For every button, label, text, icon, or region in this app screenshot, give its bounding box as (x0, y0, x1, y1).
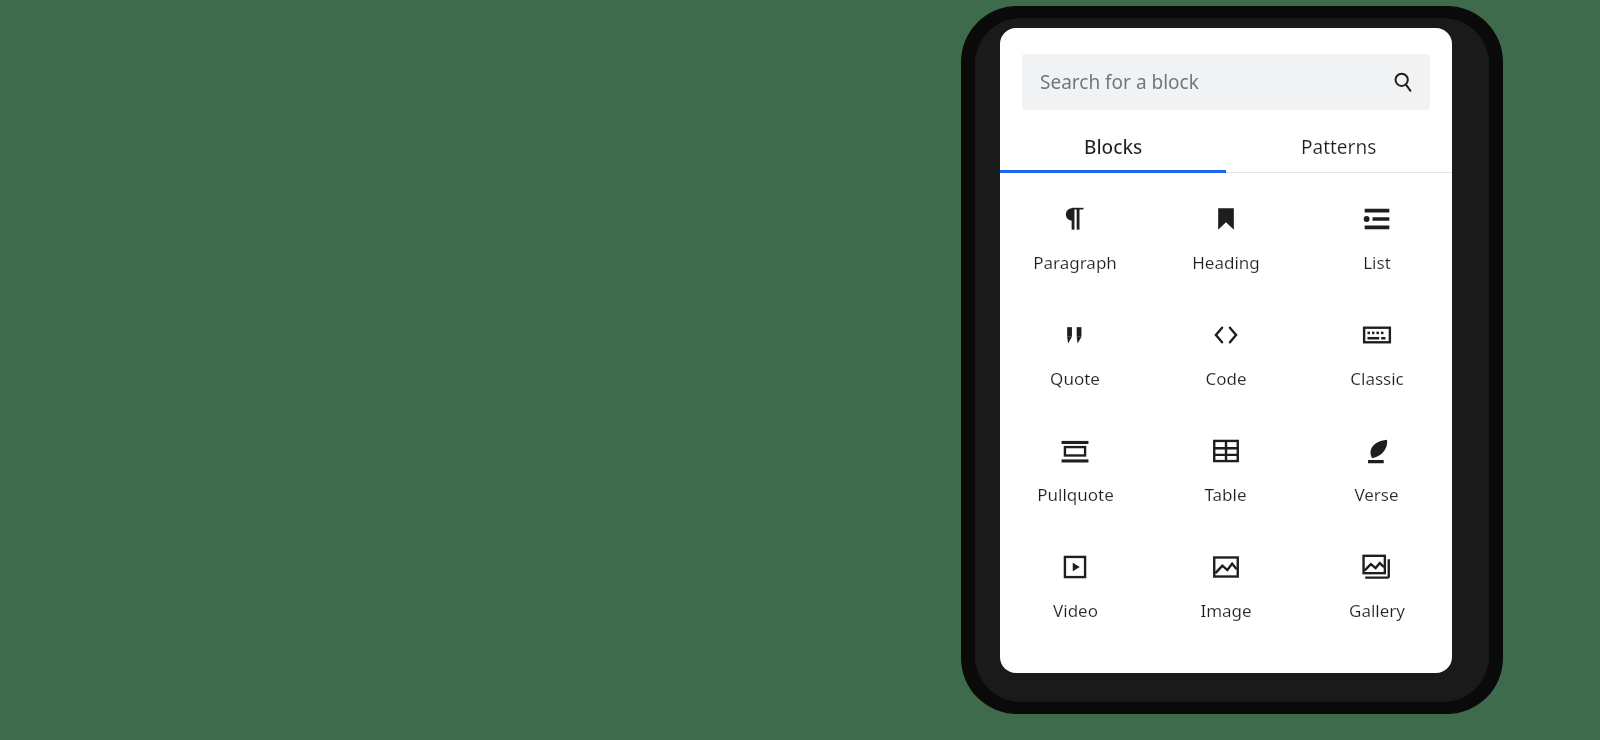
button[interactable]: Code (1150, 305, 1301, 421)
staticText: Image (1200, 599, 1252, 622)
staticText: Patterns (1301, 134, 1377, 160)
button[interactable]: Image (1150, 537, 1301, 653)
button[interactable]: Patterns (1226, 124, 1452, 170)
button[interactable]: Heading (1150, 189, 1301, 305)
button[interactable]: Pullquote (1000, 421, 1150, 537)
staticText: Classic (1350, 367, 1404, 390)
staticText: Blocks (1084, 134, 1143, 160)
staticText: Gallery (1349, 599, 1405, 622)
button[interactable]: Verse (1301, 421, 1452, 537)
button[interactable]: Paragraph (1000, 189, 1150, 305)
staticText: Heading (1192, 251, 1260, 274)
staticText: Quote (1050, 367, 1100, 390)
staticText: Paragraph (1033, 251, 1117, 274)
staticText: Verse (1354, 483, 1399, 506)
staticText: Search for a block (1040, 69, 1199, 95)
button[interactable]: Table (1150, 421, 1301, 537)
button[interactable]: List (1301, 189, 1452, 305)
button[interactable]: Video (1000, 537, 1150, 653)
button[interactable]: Quote (1000, 305, 1150, 421)
staticText: Code (1205, 367, 1247, 390)
staticText: Video (1053, 599, 1098, 622)
staticText: List (1363, 251, 1391, 274)
button[interactable]: Gallery (1301, 537, 1452, 653)
button[interactable]: Search for a block (1022, 54, 1430, 110)
other: Search (1392, 71, 1414, 93)
button[interactable]: Classic (1301, 305, 1452, 421)
staticText: Pullquote (1037, 483, 1114, 506)
staticText: Table (1204, 483, 1247, 506)
button[interactable]: Blocks (1000, 124, 1226, 170)
